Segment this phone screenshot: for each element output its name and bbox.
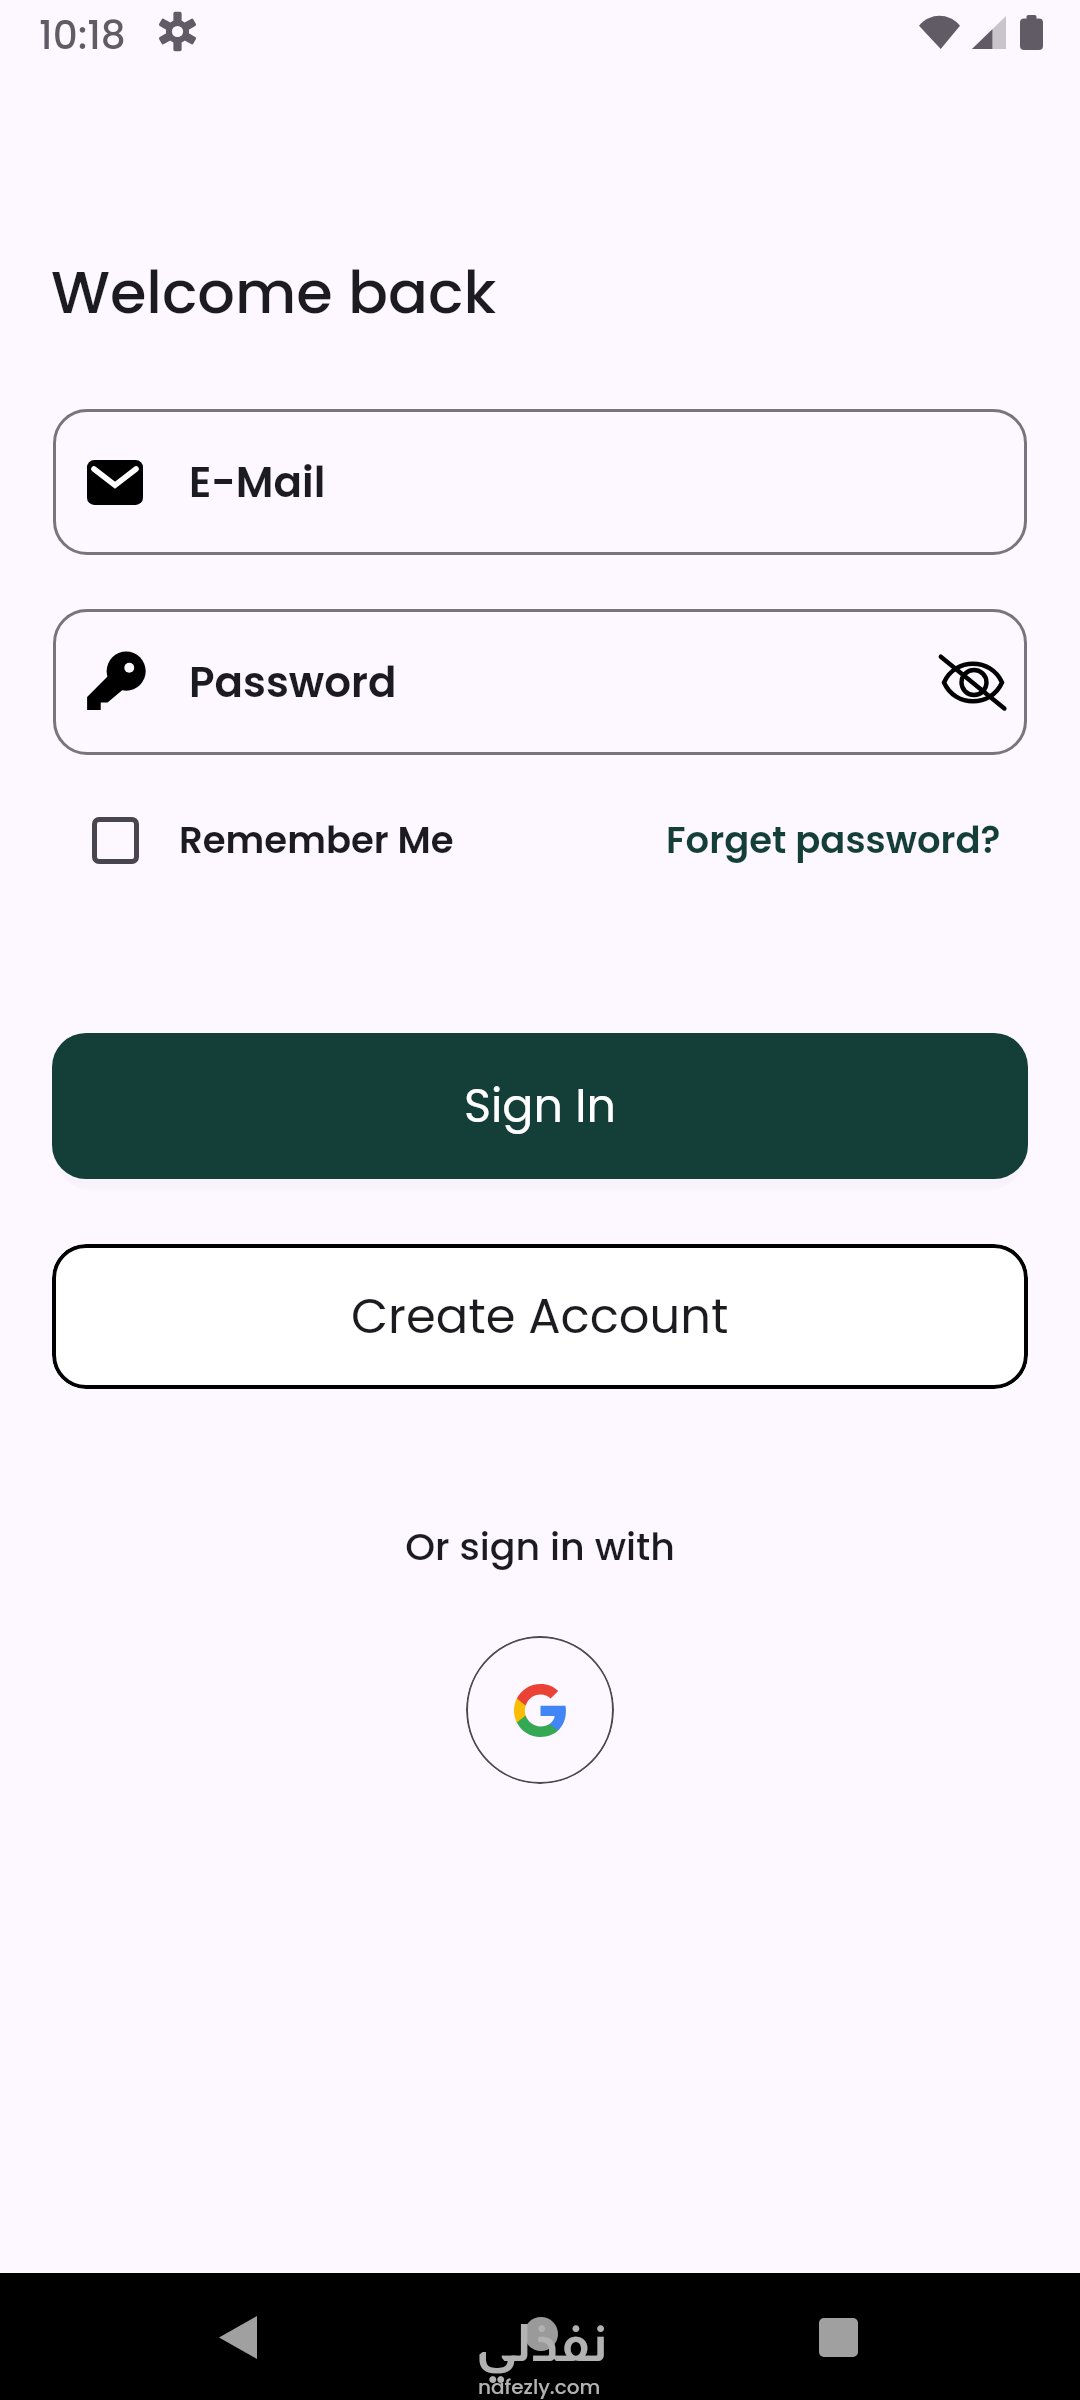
button[interactable]: Password [53, 609, 1027, 755]
button[interactable]: Show password [923, 632, 1023, 732]
button[interactable]: Create Account [52, 1244, 1028, 1389]
button[interactable]: Remember Me checkbox [80, 805, 150, 875]
button[interactable]: Sign In [52, 1033, 1028, 1179]
staticText: Create Account [351, 1283, 729, 1350]
staticText: E-Mail [189, 453, 326, 512]
staticText: نفذلي [476, 2314, 608, 2372]
staticText: Sign In [464, 1074, 616, 1138]
button[interactable]: Remember Me [179, 814, 454, 866]
button[interactable]: E-Mail [53, 409, 1027, 555]
staticText: 10:18 [39, 8, 126, 63]
button[interactable]: Back [190, 2289, 286, 2385]
staticText: Or sign in with [0, 1520, 1080, 1573]
staticText: nafezly.com [478, 2373, 601, 2400]
staticText: Welcome back [51, 251, 497, 334]
button[interactable]: Sign in with Google [466, 1636, 614, 1784]
button[interactable]: Forget password? [666, 814, 1001, 866]
button[interactable]: Recent apps [790, 2289, 886, 2385]
staticText: Password [189, 653, 397, 712]
